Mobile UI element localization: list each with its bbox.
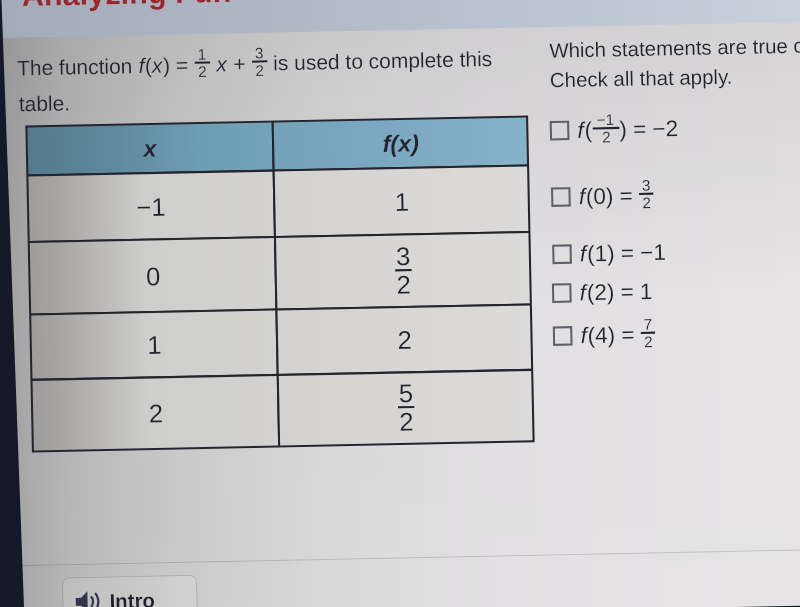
- staticText: +: [227, 51, 252, 75]
- staticText: 5: [398, 378, 413, 407]
- staticText: 2: [148, 399, 163, 428]
- staticText: (4) =: [587, 322, 641, 348]
- staticText: f: [580, 323, 588, 348]
- staticText: 2: [644, 333, 653, 350]
- staticText: 1: [395, 187, 409, 216]
- staticText: f: [138, 54, 145, 77]
- staticText: −1: [596, 111, 615, 128]
- staticText: 3: [396, 241, 411, 270]
- button[interactable]: f: [554, 315, 655, 354]
- staticText: f: [578, 184, 586, 209]
- staticText: table.: [19, 91, 71, 115]
- staticText: x: [152, 53, 163, 77]
- button[interactable]: Play intro audio: [62, 575, 198, 607]
- staticText: Which statements are true c: [549, 34, 800, 62]
- staticText: 3: [255, 44, 264, 62]
- button[interactable]: f: [553, 239, 667, 267]
- staticText: (: [584, 117, 593, 143]
- staticText: (0) =: [586, 183, 639, 209]
- staticText: f: [577, 117, 585, 143]
- staticText: x: [143, 135, 157, 162]
- staticText: 2: [198, 63, 207, 80]
- staticText: 0: [146, 262, 161, 291]
- other: Play intro audio: [74, 589, 99, 607]
- button[interactable]: f: [550, 109, 679, 149]
- staticText: Intro: [109, 589, 156, 607]
- staticText: Analyzing Fun: [21, 0, 232, 13]
- staticText: ) = −2: [619, 115, 679, 142]
- staticText: −1: [136, 192, 166, 221]
- staticText: 2: [255, 61, 265, 79]
- staticText: is used to complete this: [267, 47, 492, 75]
- staticText: 7: [643, 315, 653, 333]
- staticText: 1: [197, 45, 207, 63]
- staticText: f: [579, 280, 587, 305]
- staticText: 2: [397, 325, 412, 354]
- staticText: x: [216, 52, 228, 76]
- staticText: f: [580, 241, 587, 267]
- staticText: 2: [642, 194, 652, 211]
- button[interactable]: f: [553, 278, 653, 306]
- staticText: Check all that apply.: [550, 65, 733, 91]
- staticText: (: [144, 53, 152, 77]
- staticText: 2: [602, 128, 611, 146]
- staticText: The function: [17, 54, 139, 80]
- staticText: f(x): [382, 130, 419, 157]
- staticText: (1) = −1: [587, 239, 667, 266]
- staticText: 2: [396, 270, 411, 299]
- staticText: 3: [642, 176, 651, 194]
- button[interactable]: f: [552, 176, 654, 215]
- staticText: ) =: [163, 53, 195, 77]
- staticText: 1: [147, 330, 162, 359]
- staticText: (2) = 1: [587, 278, 653, 305]
- staticText: 2: [399, 407, 414, 436]
